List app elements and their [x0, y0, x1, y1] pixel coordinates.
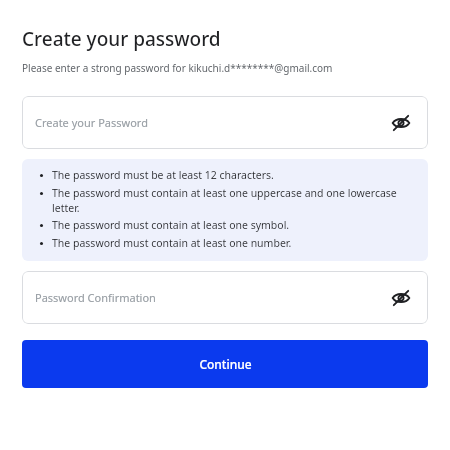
- staticText: The password must contain at least one n…: [52, 236, 420, 250]
- staticText: The password must contain at least one u…: [52, 186, 420, 215]
- button[interactable]: Show password: [388, 285, 414, 311]
- staticText: Create your Password: [35, 115, 388, 130]
- staticText: Password Confirmation: [35, 290, 388, 305]
- button[interactable]: Show password: [388, 110, 414, 136]
- button[interactable]: Create your Password: [22, 96, 428, 149]
- staticText: Continue: [199, 356, 252, 372]
- staticText: Please enter a strong password for kikuc…: [22, 61, 333, 75]
- staticText: The password must contain at least one s…: [52, 218, 420, 232]
- button[interactable]: Password Confirmation: [22, 271, 428, 324]
- staticText: Create your password: [22, 26, 221, 52]
- button[interactable]: Continue: [22, 340, 428, 388]
- staticText: The password must be at least 12 charact…: [52, 168, 420, 182]
